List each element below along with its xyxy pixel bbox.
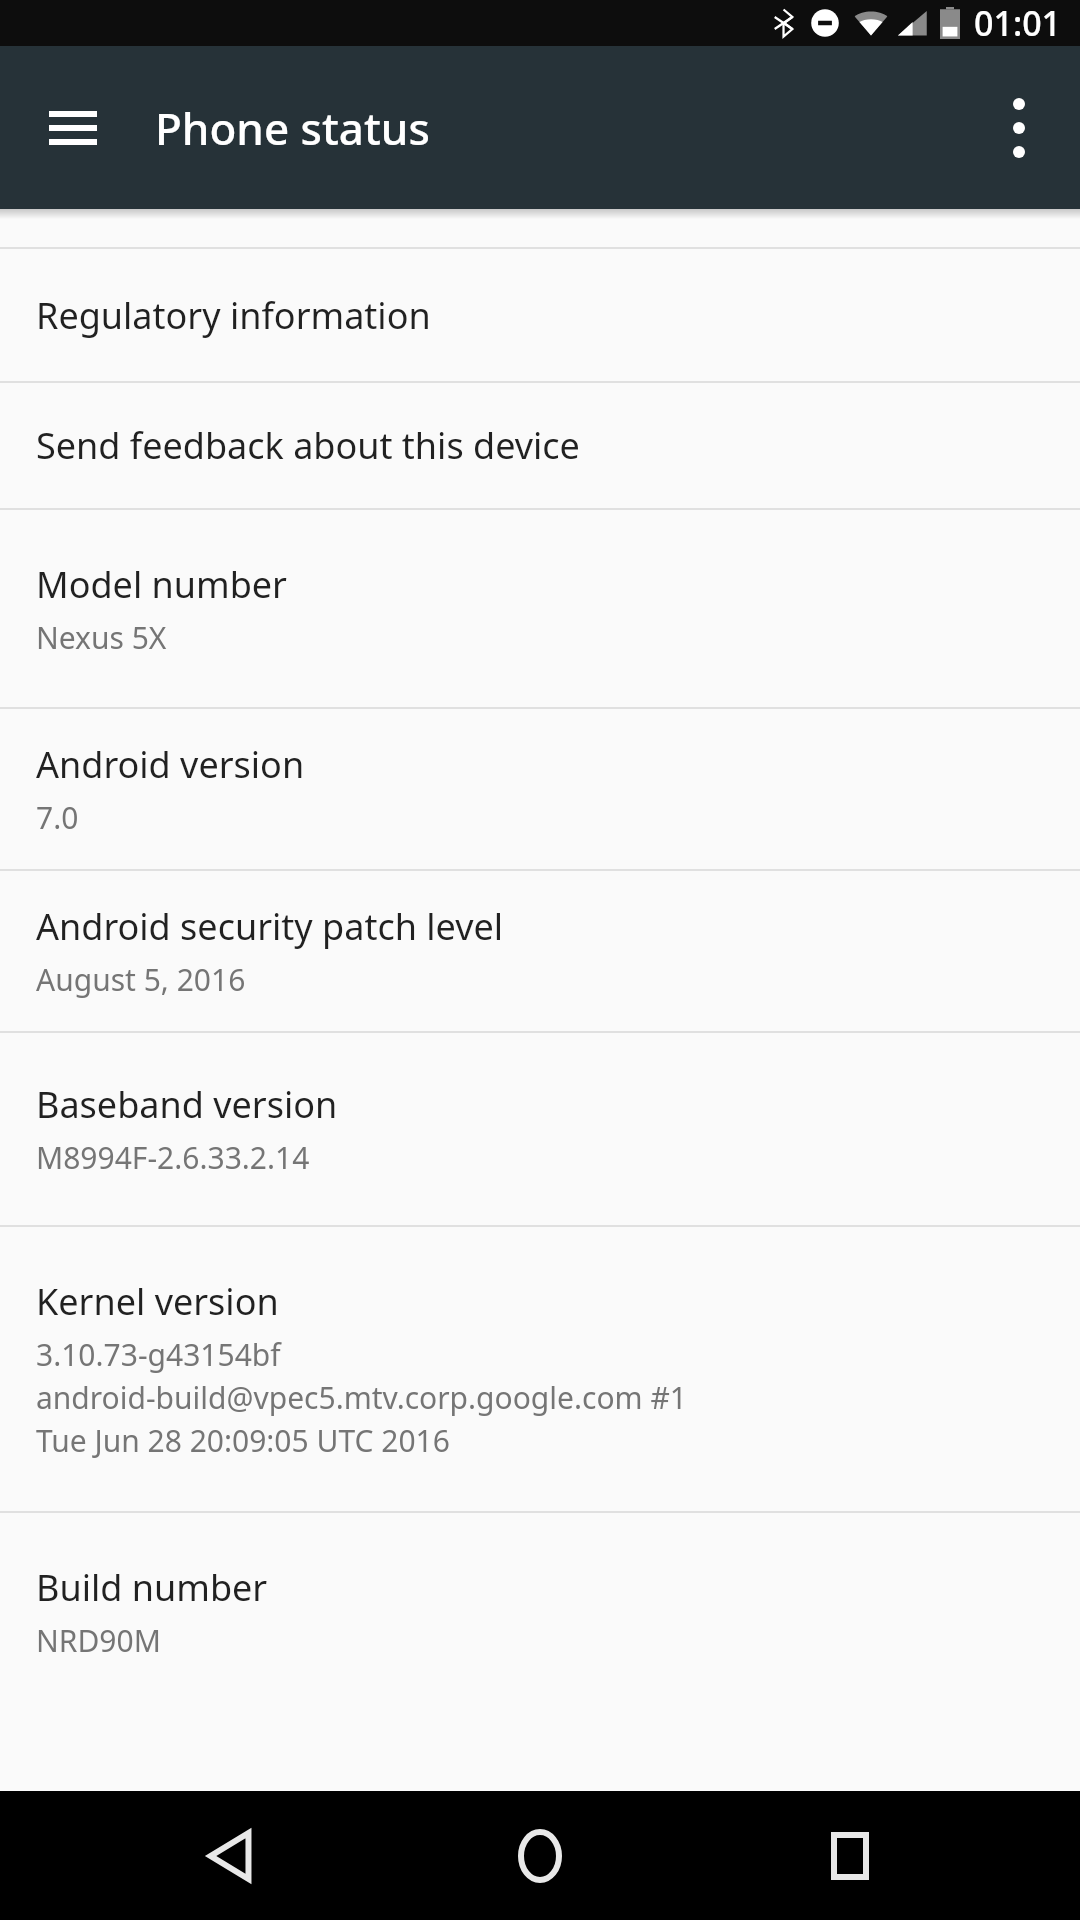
staticText: 7.0 — [36, 797, 79, 838]
staticText: August 5, 2016 — [36, 959, 246, 1000]
button[interactable]: More options — [964, 73, 1074, 183]
button[interactable]: Android security patch level — [0, 871, 1080, 1031]
staticText: M8994F-2.6.33.2.14 — [36, 1137, 310, 1178]
button[interactable]: Kernel version — [0, 1227, 1080, 1511]
button[interactable]: Regulatory information — [0, 249, 1080, 381]
button[interactable]: Baseband version — [0, 1033, 1080, 1225]
staticText: Build number — [36, 1563, 268, 1612]
button[interactable]: Open navigation drawer — [14, 69, 132, 187]
button[interactable]: Model number — [0, 510, 1080, 707]
staticText: Tue Jun 28 20:09:05 UTC 2016 — [36, 1420, 450, 1461]
staticText: Android version — [36, 740, 305, 789]
staticText: 3.10.73-g43154bf — [36, 1334, 281, 1375]
staticText: Android security patch level — [36, 902, 504, 951]
staticText: Baseband version — [36, 1080, 338, 1129]
staticText: Model number — [36, 560, 287, 609]
button[interactable]: Android version — [0, 709, 1080, 869]
button[interactable]: Back — [150, 1791, 310, 1920]
staticText: Phone status — [155, 98, 430, 158]
staticText: Regulatory information — [36, 291, 431, 340]
button[interactable]: Send feedback about this device — [0, 383, 1080, 508]
staticText: 01:01 — [974, 0, 1062, 46]
staticText: android-build@vpec5.mtv.corp.google.com … — [36, 1377, 687, 1418]
button[interactable]: Recent apps — [770, 1791, 930, 1920]
staticText: Kernel version — [36, 1277, 279, 1326]
staticText: Nexus 5X — [36, 617, 167, 658]
staticText: Send feedback about this device — [36, 421, 580, 470]
button[interactable]: Home — [460, 1791, 620, 1920]
button[interactable]: Build number — [0, 1513, 1080, 1710]
staticText: NRD90M — [36, 1620, 161, 1661]
